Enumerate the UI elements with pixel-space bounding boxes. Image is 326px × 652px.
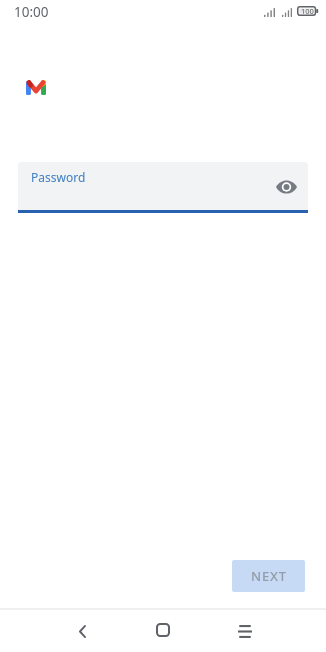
- button[interactable]: NEXT: [232, 560, 305, 592]
- staticText: NEXT: [251, 567, 287, 585]
- button[interactable]: Password: [18, 162, 308, 212]
- button[interactable]: Back: [61, 611, 103, 652]
- staticText: 10:00: [14, 3, 49, 21]
- button[interactable]: Recent apps: [224, 611, 266, 652]
- staticText: 100: [301, 6, 314, 16]
- staticText: Password: [31, 169, 86, 185]
- button[interactable]: Home: [142, 609, 184, 650]
- button[interactable]: Show password: [263, 164, 309, 210]
